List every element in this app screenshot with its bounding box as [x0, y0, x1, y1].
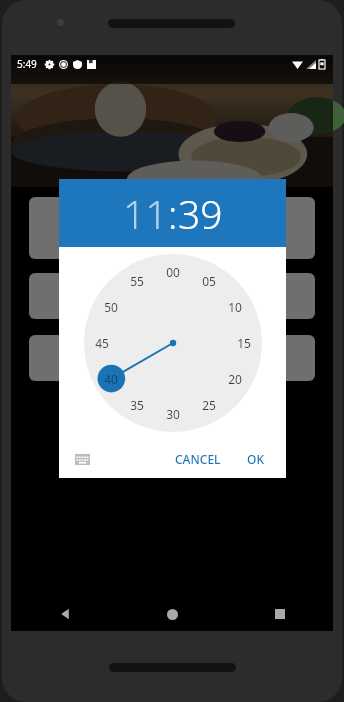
button[interactable]: Recent apps: [226, 597, 333, 631]
staticText: 45: [95, 335, 109, 351]
button[interactable]: [84, 254, 262, 432]
button[interactable]: 5 daily special/week 12€/week: [29, 335, 315, 381]
staticText: 5 daily special/week 12€/week: [77, 349, 268, 367]
staticText: 35: [130, 397, 144, 413]
staticText: 25: [202, 397, 216, 413]
button[interactable]: OK: [239, 445, 272, 473]
staticText: 05: [202, 273, 216, 289]
staticText: CANCEL: [175, 451, 221, 467]
staticText: 55: [130, 273, 144, 289]
staticText: 00: [166, 264, 180, 280]
button[interactable]: plan your cake: [29, 197, 315, 259]
button[interactable]: Switch to text input: [69, 446, 95, 472]
staticText: 10: [228, 299, 242, 315]
button[interactable]: 11: [123, 187, 168, 240]
staticText: 30: [166, 406, 180, 422]
staticText: 15: [237, 335, 251, 351]
staticText: 40: [104, 371, 118, 387]
staticText: 50: [104, 299, 118, 315]
staticText: 1 daily special/day 60€/month: [77, 287, 267, 305]
staticText: 20: [228, 371, 242, 387]
button[interactable]: 39: [178, 187, 223, 240]
button[interactable]: Back: [11, 597, 119, 631]
staticText: 5:49: [17, 57, 37, 71]
button[interactable]: CANCEL: [167, 445, 229, 473]
button[interactable]: Home: [119, 597, 226, 631]
button[interactable]: 1 daily special/day 60€/month: [29, 273, 315, 319]
staticText: plan your cake: [127, 219, 217, 237]
staticText: :: [168, 187, 178, 240]
staticText: OK: [247, 451, 264, 467]
